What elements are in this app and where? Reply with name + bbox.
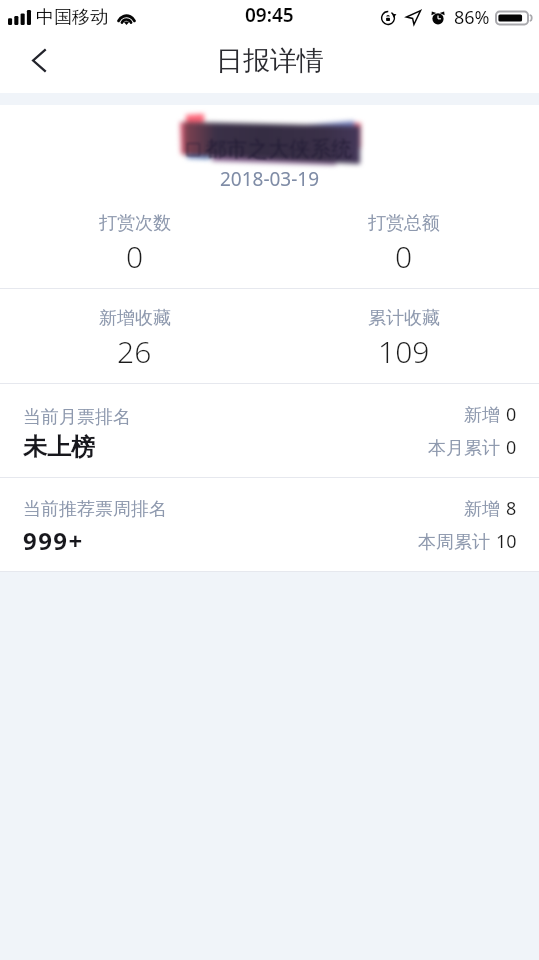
button[interactable]: 新增收藏 xyxy=(0,289,269,383)
staticText: 日报详情 xyxy=(216,44,324,78)
staticText: 10 xyxy=(496,529,517,554)
button[interactable]: 当前月票排名 xyxy=(0,384,539,477)
button[interactable]: 打赏次数 xyxy=(0,194,269,288)
staticText: 109 xyxy=(378,331,430,372)
staticText: 0 xyxy=(506,435,517,460)
button[interactable]: Back xyxy=(0,32,73,93)
staticText: 0 xyxy=(126,236,144,277)
button[interactable]: 当前推荐票周排名 xyxy=(0,478,539,571)
staticText: □ 都市之大侠系统 xyxy=(187,134,353,163)
staticText: 中国移动 xyxy=(36,6,108,29)
staticText: 2018-03-19 xyxy=(0,166,539,192)
staticText: 999+ xyxy=(23,524,84,557)
staticText: 当前月票排名 xyxy=(23,406,131,429)
staticText: 本周累计 xyxy=(418,531,490,554)
staticText: 86% xyxy=(454,5,490,30)
staticText: 0 xyxy=(395,236,413,277)
staticText: 新增 xyxy=(464,404,500,427)
button[interactable]: 打赏总额 xyxy=(269,194,539,288)
staticText: 新增 xyxy=(464,498,500,521)
staticText: 未上榜 xyxy=(23,432,95,462)
staticText: 8 xyxy=(506,496,517,521)
staticText: 0 xyxy=(506,402,517,427)
staticText: 26 xyxy=(117,331,152,372)
staticText: 新增收藏 xyxy=(99,307,171,330)
button[interactable]: 累计收藏 xyxy=(269,289,539,383)
staticText: 打赏次数 xyxy=(99,212,171,235)
staticText: 当前推荐票周排名 xyxy=(23,498,167,521)
staticText: 本月累计 xyxy=(428,437,500,460)
staticText: 09:45 xyxy=(245,2,294,28)
staticText: 累计收藏 xyxy=(368,307,440,330)
staticText: 打赏总额 xyxy=(368,212,440,235)
